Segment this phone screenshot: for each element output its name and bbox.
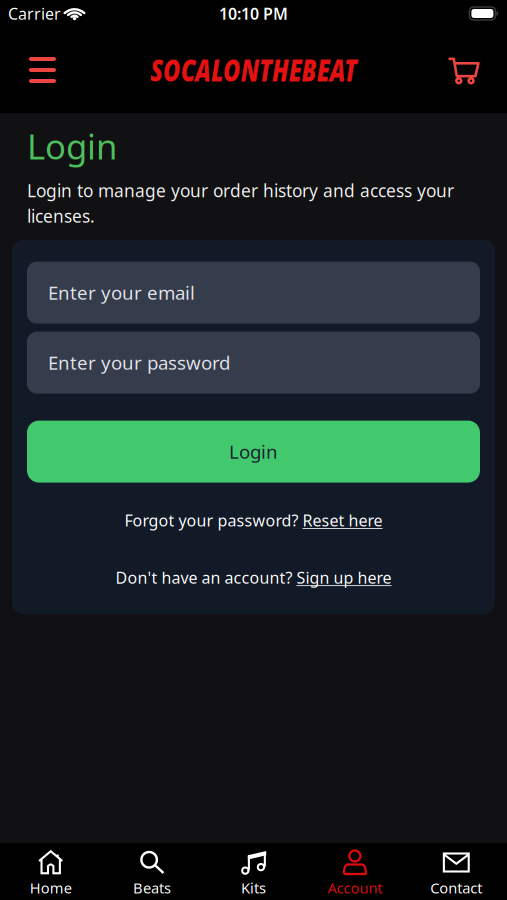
staticText: Enter your email bbox=[48, 280, 195, 305]
staticText: Login bbox=[27, 123, 117, 169]
button[interactable]: Enter your password bbox=[27, 332, 480, 394]
staticText: Login to manage your order history and a… bbox=[27, 179, 454, 227]
button[interactable]: Enter your email bbox=[27, 262, 480, 324]
staticText: Don't have an account? bbox=[115, 567, 296, 588]
button[interactable]: Home bbox=[0, 843, 101, 897]
staticText: Carrier bbox=[8, 3, 61, 24]
button[interactable]: Contact bbox=[406, 843, 507, 897]
staticText: Reset here bbox=[302, 510, 382, 531]
staticText: Enter your password bbox=[48, 350, 230, 375]
staticText: SOCALONTHEBEAT bbox=[124, 50, 382, 89]
button[interactable]: Reset here bbox=[302, 510, 382, 531]
button[interactable]: Sign up here bbox=[296, 567, 391, 588]
staticText: Login bbox=[229, 439, 278, 464]
staticText: Account bbox=[327, 878, 382, 897]
staticText: Home bbox=[30, 878, 72, 897]
button[interactable]: Cart bbox=[449, 56, 479, 84]
staticText: Sign up here bbox=[296, 567, 391, 588]
button[interactable]: Beats bbox=[101, 843, 203, 897]
button[interactable]: Kits bbox=[203, 843, 304, 897]
staticText: Contact bbox=[430, 878, 482, 897]
button[interactable]: Menu bbox=[29, 47, 56, 93]
staticText: Forgot your password? bbox=[124, 510, 302, 531]
button[interactable]: Account bbox=[304, 843, 406, 897]
button[interactable]: Login bbox=[27, 421, 480, 483]
staticText: Kits bbox=[241, 878, 266, 897]
button[interactable]: SocalOnTheBeat bbox=[124, 50, 382, 89]
staticText: Beats bbox=[133, 878, 171, 897]
staticText: 10:10 PM bbox=[219, 3, 288, 24]
